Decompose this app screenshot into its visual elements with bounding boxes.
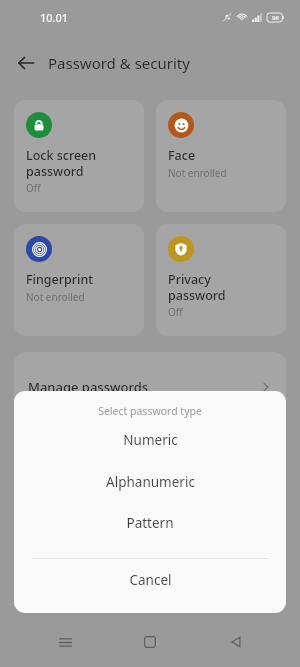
staticText: 98: [272, 14, 279, 22]
staticText: Not enrolled: [26, 290, 85, 304]
button[interactable]: Home: [129, 621, 171, 663]
button[interactable]: Back: [215, 621, 257, 663]
button[interactable]: Cancel: [14, 559, 286, 601]
button[interactable]: Pattern: [14, 502, 286, 543]
staticText: Lock screen password: [26, 147, 97, 179]
button[interactable]: Back: [10, 47, 42, 79]
staticText: Off: [168, 305, 183, 319]
staticText: Privacy password: [168, 271, 226, 303]
button[interactable]: Recent apps: [44, 621, 86, 663]
button[interactable]: Face: [156, 100, 286, 212]
staticText: Numeric: [123, 431, 178, 449]
staticText: Cancel: [129, 571, 172, 589]
staticText: Pattern: [126, 514, 174, 532]
button[interactable]: Privacy password: [156, 224, 286, 336]
staticText: Manage passwords: [28, 378, 149, 396]
button[interactable]: Numeric: [14, 418, 286, 461]
staticText: Select password type: [14, 404, 286, 418]
button[interactable]: Manage passwords: [14, 352, 286, 422]
staticText: Off: [26, 181, 41, 195]
button[interactable]: Fingerprint: [14, 224, 144, 336]
staticText: Face: [168, 147, 196, 164]
staticText: Alphanumeric: [106, 473, 195, 491]
button[interactable]: Alphanumeric: [14, 461, 286, 502]
staticText: Not enrolled: [168, 166, 227, 180]
button[interactable]: Lock screen password: [14, 100, 144, 212]
staticText: Password & security: [48, 53, 190, 73]
staticText: 10.01: [40, 10, 69, 25]
staticText: Fingerprint: [26, 271, 94, 288]
